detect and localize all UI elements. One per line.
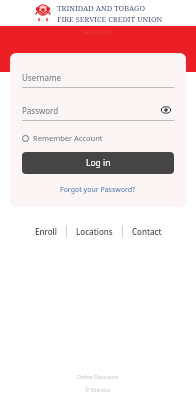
button[interactable]: Show password: [158, 102, 174, 118]
button[interactable]: Locations: [67, 223, 122, 240]
staticText: Password: [22, 105, 59, 116]
staticText: Contact: [132, 226, 162, 237]
button[interactable]: Contact: [123, 223, 171, 240]
staticText: FIRE SERVICE CREDIT UNION: [57, 14, 163, 24]
staticText: TRINIDAD AND TOBAGO: [57, 3, 145, 13]
button[interactable]: Log in: [22, 152, 174, 174]
staticText: Version 5.22.1: [83, 29, 113, 35]
button[interactable]: Username: [22, 67, 174, 87]
staticText: Locations: [76, 226, 113, 237]
staticText: Enroll: [35, 226, 57, 237]
staticText: Remember Account: [33, 133, 103, 143]
staticText: Username: [22, 72, 61, 83]
button[interactable]: Online Disclosure: [76, 373, 120, 382]
staticText: Online Disclosure: [77, 374, 119, 381]
staticText: Forgot your Password?: [60, 185, 136, 195]
staticText: © Sharetec: [85, 387, 111, 394]
button[interactable]: Remember Account: [22, 131, 103, 145]
staticText: Log in: [86, 157, 111, 169]
button[interactable]: Forgot your Password?: [58, 183, 138, 197]
button[interactable]: Enroll: [26, 223, 66, 240]
button[interactable]: Password: [22, 100, 174, 120]
